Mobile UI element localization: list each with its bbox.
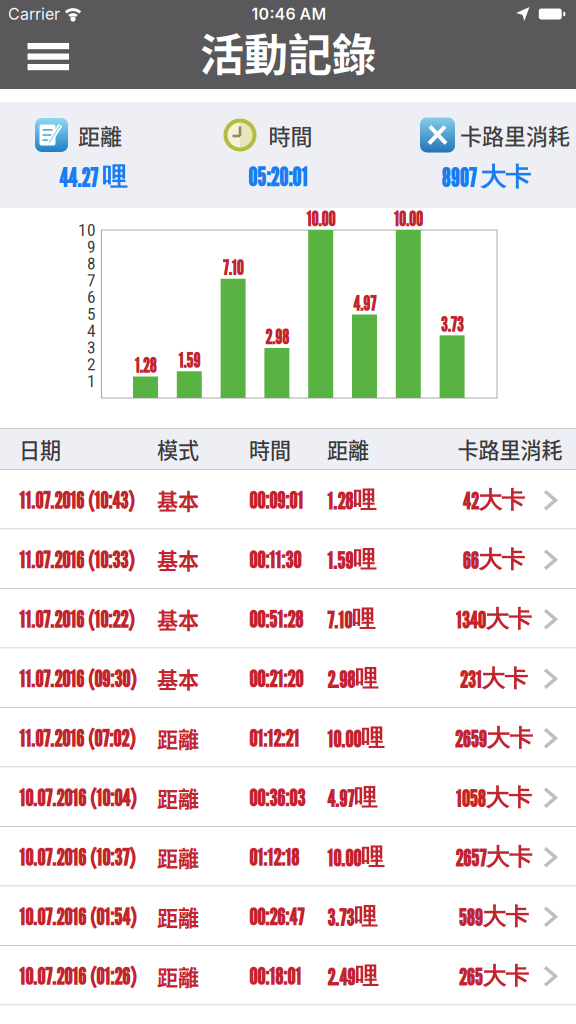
staticText: 589大卡	[458, 902, 528, 931]
staticText: 距離	[157, 961, 199, 991]
staticText: 活動記錄	[200, 20, 376, 84]
staticText: 2	[87, 354, 96, 374]
staticText: 5	[87, 304, 96, 324]
staticText: 11.07.2016 (07:02)	[19, 724, 135, 752]
staticText: 日期	[19, 434, 61, 464]
staticText: 2.49哩	[327, 962, 378, 991]
staticText: 1.28哩	[327, 486, 376, 515]
staticText: 00:18:01	[249, 962, 301, 990]
staticText: 6	[87, 287, 96, 307]
button[interactable]: 10.07.2016 (10:37)	[0, 827, 576, 886]
staticText: 4.97哩	[327, 783, 377, 812]
staticText: 10.00	[394, 207, 423, 231]
staticText: 2659大卡	[454, 724, 532, 753]
button[interactable]: 10.07.2016 (01:26)	[0, 946, 576, 1005]
staticText: 10.00哩	[327, 843, 384, 872]
staticText: 基本	[157, 663, 199, 694]
staticText: 8907 大卡	[441, 161, 530, 193]
staticText: 7.10	[223, 256, 244, 280]
staticText: 模式	[157, 434, 199, 464]
staticText: 9	[87, 237, 96, 257]
staticText: 10.00	[306, 207, 335, 231]
staticText: Carrier	[8, 4, 60, 24]
staticText: 00:36:03	[249, 784, 305, 812]
staticText: 基本	[157, 485, 199, 515]
staticText: 3.73	[441, 312, 464, 336]
staticText: 1.28	[134, 353, 156, 377]
staticText: 42大卡	[462, 486, 524, 515]
staticText: 10.07.2016 (01:26)	[19, 962, 136, 990]
staticText: 11.07.2016 (10:22)	[19, 605, 134, 633]
staticText: 10:46 AM	[251, 4, 326, 24]
button[interactable]: 10.07.2016 (01:54)	[0, 886, 576, 946]
staticText: 卡路里消耗	[460, 119, 570, 151]
staticText: 卡路里消耗	[457, 434, 562, 464]
staticText: 7.10哩	[327, 605, 375, 634]
staticText: 1058大卡	[455, 783, 531, 812]
staticText: 00:11:30	[249, 546, 301, 574]
staticText: 11.07.2016 (09:30)	[19, 665, 136, 693]
staticText: 7	[87, 270, 96, 290]
staticText: 8	[87, 253, 96, 274]
staticText: 00:09:01	[249, 486, 303, 514]
staticText: 距離	[78, 119, 122, 151]
staticText: 2.98哩	[327, 664, 378, 693]
button[interactable]: 10.07.2016 (10:04)	[0, 767, 576, 827]
button[interactable]: 11.07.2016 (10:43)	[0, 470, 576, 529]
staticText: 距離	[157, 782, 199, 813]
staticText: 時間	[268, 119, 312, 151]
staticText: 1340大卡	[455, 605, 531, 634]
staticText: 66大卡	[462, 545, 524, 574]
staticText: 11.07.2016 (10:43)	[19, 486, 134, 514]
staticText: 00:51:28	[249, 605, 303, 633]
staticText: 44.27 哩	[59, 161, 127, 193]
staticText: 10.07.2016 (10:37)	[19, 843, 135, 871]
staticText: 4	[87, 321, 96, 341]
staticText: 10.00哩	[327, 724, 384, 753]
button[interactable]: 11.07.2016 (10:33)	[0, 529, 576, 589]
staticText: 00:26:47	[249, 903, 304, 931]
staticText: 01:12:21	[249, 724, 299, 752]
staticText: 距離	[327, 434, 369, 464]
staticText: 4.97	[353, 291, 376, 315]
button[interactable]: 11.07.2016 (09:30)	[0, 648, 576, 708]
staticText: 距離	[157, 842, 199, 872]
staticText: 11.07.2016 (10:33)	[19, 546, 134, 574]
staticText: 基本	[157, 604, 199, 634]
staticText: 00:21:20	[249, 665, 303, 693]
staticText: 3.73哩	[327, 902, 377, 931]
staticText: 2657大卡	[455, 843, 532, 872]
button[interactable]: 11.07.2016 (07:02)	[0, 708, 576, 767]
staticText: 05:20:01	[248, 162, 307, 192]
staticText: 距離	[157, 901, 199, 932]
staticText: 265大卡	[458, 962, 528, 991]
staticText: 1.59	[178, 348, 200, 372]
staticText: 10	[78, 220, 96, 240]
staticText: 3	[87, 337, 96, 358]
staticText: 1.59哩	[327, 545, 376, 574]
staticText: 2.98	[265, 325, 289, 349]
staticText: 時間	[249, 434, 291, 464]
staticText: 基本	[157, 544, 199, 575]
staticText: 10.07.2016 (10:04)	[19, 784, 136, 812]
staticText: 231大卡	[459, 664, 527, 693]
button[interactable]: 11.07.2016 (10:22)	[0, 589, 576, 648]
button[interactable]: Menu	[27, 43, 69, 70]
staticText: 距離	[157, 723, 199, 753]
staticText: 10.07.2016 (01:54)	[19, 903, 136, 931]
staticText: 1	[87, 371, 96, 391]
staticText: 01:12:18	[249, 843, 299, 871]
